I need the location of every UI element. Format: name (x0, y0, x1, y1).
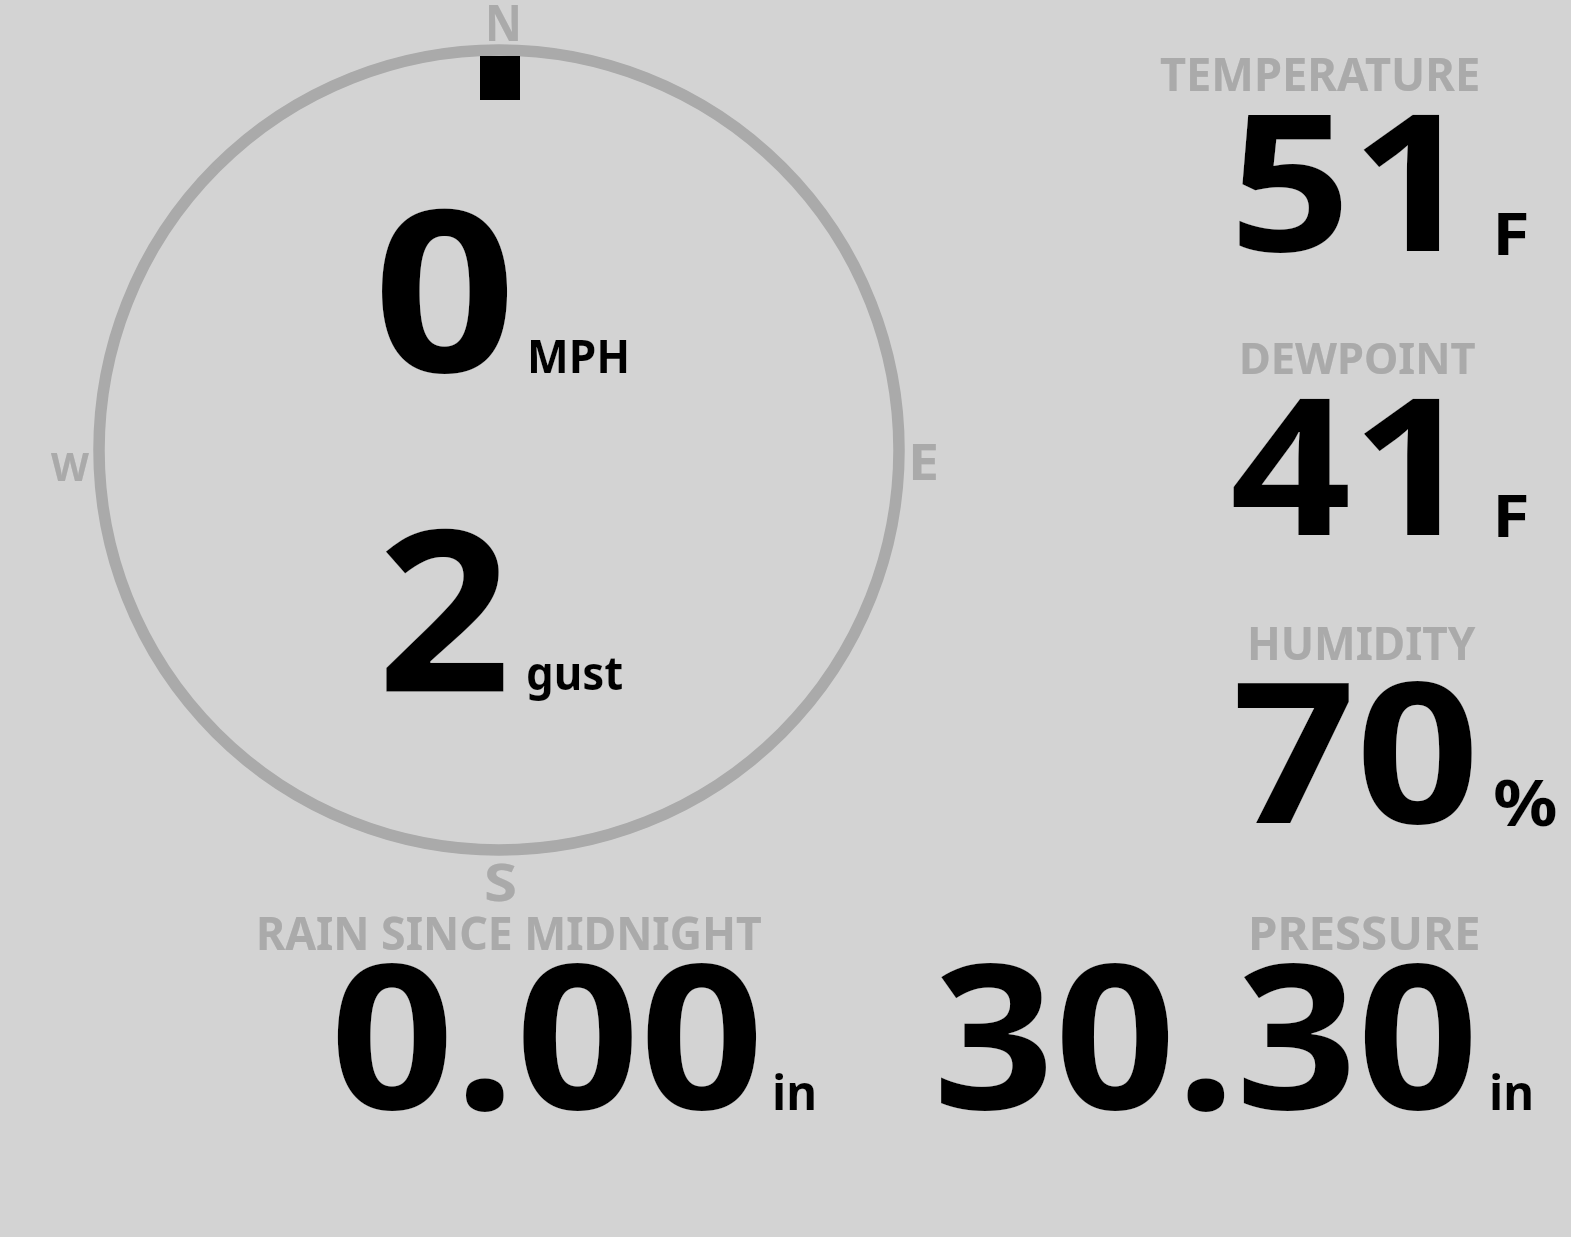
button[interactable]: Wind 0 MPH, gust 2, direction north (99, 50, 899, 850)
staticText: % (1493, 757, 1558, 845)
staticText: F (1492, 192, 1531, 272)
staticText: 0.00 (330, 895, 765, 1168)
staticText: W (51, 439, 89, 492)
staticText: N (485, 0, 522, 56)
staticText: 51 (1229, 47, 1473, 306)
staticText: TEMPERATURE (1160, 42, 1481, 105)
staticText: RAIN SINCE MIDNIGHT (256, 901, 762, 964)
staticText: E (908, 426, 940, 495)
staticText: PRESSURE (1248, 901, 1481, 964)
staticText: MPH (527, 324, 631, 387)
staticText: in (772, 1059, 818, 1124)
staticText: 70 (1232, 613, 1481, 880)
staticText: S (484, 845, 517, 916)
staticText: gust (526, 640, 624, 704)
staticText: 41 (1230, 331, 1473, 590)
staticText: HUMIDITY (1247, 611, 1476, 674)
button[interactable]: Humidity 70 percent (1100, 610, 1560, 860)
button[interactable]: Temperature 51 F (1100, 40, 1560, 290)
button[interactable]: Rain since midnight 0.00 in (250, 900, 810, 1130)
staticText: 30.30 (933, 895, 1479, 1168)
staticText: 0 (373, 133, 516, 438)
staticText: DEWPOINT (1239, 328, 1476, 387)
button[interactable]: Dewpoint 41 F (1100, 325, 1560, 575)
staticText: F (1492, 474, 1531, 554)
button[interactable]: Pressure 30.30 in (900, 900, 1540, 1130)
staticText: in (1489, 1059, 1535, 1124)
staticText: 2 (377, 450, 511, 757)
